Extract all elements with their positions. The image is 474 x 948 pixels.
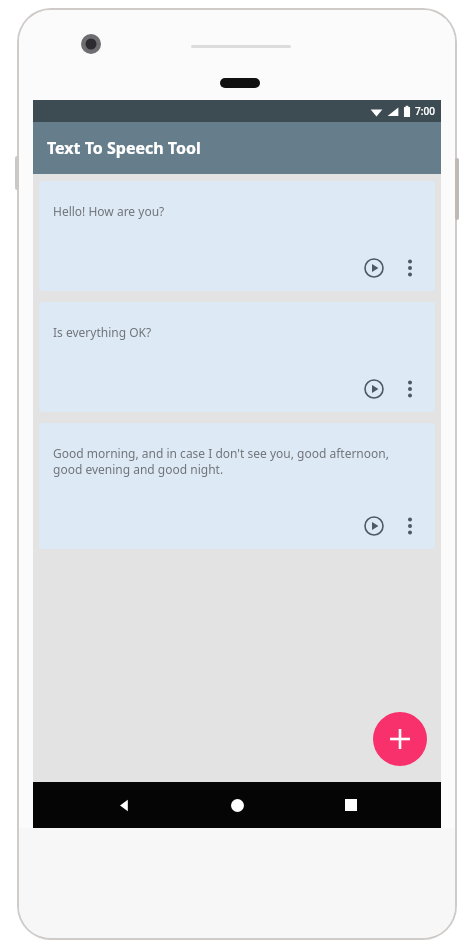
button[interactable]: Add phrase: [373, 712, 427, 766]
button[interactable]: Good morning, and in case I don't see yo…: [39, 423, 435, 549]
button[interactable]: Play: [357, 251, 391, 285]
staticText: Good morning, and in case I don't see yo…: [53, 445, 405, 478]
button[interactable]: More options: [395, 511, 425, 541]
button[interactable]: Home: [214, 782, 260, 828]
button[interactable]: Back: [101, 782, 147, 828]
button[interactable]: Play: [357, 372, 391, 406]
button[interactable]: More options: [395, 374, 425, 404]
staticText: 7:00: [415, 104, 435, 118]
button[interactable]: Play: [357, 509, 391, 543]
staticText: Hello! How are you?: [53, 203, 165, 219]
staticText: Text To Speech Tool: [47, 137, 201, 159]
button[interactable]: Recent apps: [328, 782, 374, 828]
button[interactable]: Is everything OK?: [39, 302, 435, 412]
staticText: Is everything OK?: [53, 324, 152, 340]
button[interactable]: Hello! How are you?: [39, 181, 435, 291]
button[interactable]: More options: [395, 253, 425, 283]
